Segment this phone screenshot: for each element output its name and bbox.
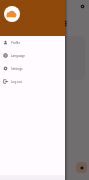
- button[interactable]: Language: [0, 49, 65, 62]
- button[interactable]: [5, 36, 85, 80]
- button[interactable]: Open navigation menu: [60, 20, 67, 27]
- staticText: Profile: [11, 41, 21, 45]
- other: App logo: [4, 6, 20, 22]
- staticText: Log out: [11, 80, 22, 84]
- staticText: Settings: [11, 67, 23, 71]
- button[interactable]: Log out: [0, 75, 65, 88]
- button[interactable]: Add: [76, 162, 87, 173]
- staticText: Language: [11, 54, 26, 58]
- button[interactable]: Settings: [0, 62, 65, 75]
- button[interactable]: [0, 0, 89, 180]
- button[interactable]: Profile: [0, 36, 65, 49]
